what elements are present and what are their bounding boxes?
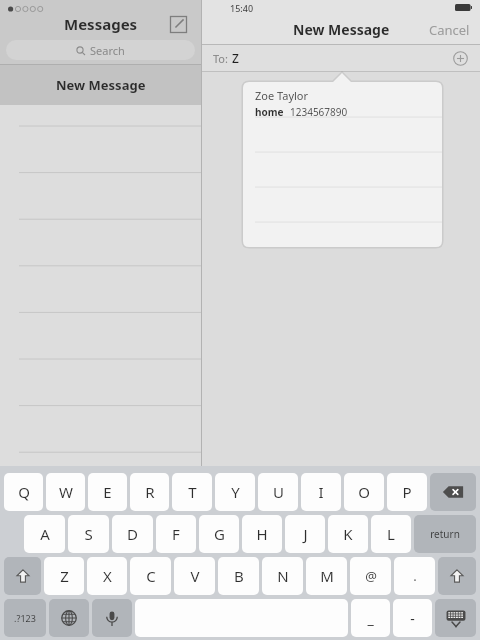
staticText: D [127, 524, 138, 544]
staticText: X [103, 566, 112, 586]
button[interactable]: J [285, 515, 325, 553]
button[interactable]: R [130, 473, 169, 511]
button[interactable]: T [172, 473, 212, 511]
button[interactable]: G [199, 515, 239, 553]
button[interactable]: I [301, 473, 341, 511]
button[interactable]: Shift [4, 557, 41, 595]
button[interactable]: E [88, 473, 127, 511]
staticText: E [103, 482, 112, 502]
button[interactable]: F [156, 515, 196, 553]
button[interactable]: @ [350, 557, 391, 595]
staticText: Q [18, 482, 30, 502]
button[interactable]: C [130, 557, 171, 595]
staticText: 15:40 [230, 2, 254, 14]
staticText: U [273, 482, 284, 502]
staticText: S [84, 524, 93, 544]
staticText: Z [60, 566, 69, 586]
button[interactable]: W [46, 473, 85, 511]
button[interactable]: Y [215, 473, 255, 511]
button[interactable]: Search [6, 40, 195, 60]
staticText: 1234567890 [290, 105, 348, 119]
staticText: L [387, 524, 395, 544]
staticText: W [59, 482, 73, 502]
staticText: Cancel [429, 21, 470, 39]
button[interactable]: Q [4, 473, 43, 511]
staticText: P [402, 482, 412, 502]
staticText: . [413, 567, 417, 585]
staticText: V [190, 566, 200, 586]
staticText: M [320, 566, 334, 586]
button[interactable]: U [258, 473, 298, 511]
staticText: New Message [293, 20, 390, 39]
button[interactable]: . [394, 557, 435, 595]
button[interactable]: return [414, 515, 476, 553]
staticText: _ [367, 609, 374, 628]
staticText: Zoe Taylor [255, 88, 309, 103]
button[interactable]: A [24, 515, 65, 553]
staticText: Messages [64, 14, 138, 34]
staticText: T [188, 482, 197, 502]
button[interactable]: L [371, 515, 411, 553]
button[interactable]: N [262, 557, 303, 595]
button[interactable]: V [174, 557, 215, 595]
staticText: New Message [56, 76, 146, 94]
button[interactable]: Next keyboard [49, 599, 89, 637]
button[interactable]: K [328, 515, 368, 553]
button[interactable]: .?123 [4, 599, 46, 637]
staticText: Z [232, 50, 239, 66]
button[interactable]: H [242, 515, 282, 553]
staticText: N [277, 566, 289, 586]
staticText: B [234, 566, 244, 586]
button[interactable]: S [68, 515, 109, 553]
button[interactable]: D [112, 515, 153, 553]
button[interactable]: _ [351, 599, 390, 637]
staticText: .?123 [14, 612, 36, 624]
staticText: F [172, 524, 180, 544]
staticText: home [255, 105, 284, 119]
staticText: - [410, 609, 415, 628]
staticText: J [303, 524, 308, 544]
staticText: K [343, 524, 353, 544]
staticText: C [146, 566, 156, 586]
button[interactable]: New Message [0, 65, 201, 105]
staticText: O [358, 482, 370, 502]
staticText: G [214, 524, 225, 544]
button[interactable]: M [306, 557, 347, 595]
staticText: R [145, 482, 155, 502]
staticText: return [430, 527, 460, 541]
button[interactable]: Shift [438, 557, 476, 595]
button[interactable]: P [387, 473, 427, 511]
button[interactable]: Backspace [430, 473, 476, 511]
button[interactable]: - [393, 599, 432, 637]
staticText: To: [213, 51, 228, 66]
button[interactable]: Hide keyboard [435, 599, 476, 637]
button[interactable]: Cancel [429, 21, 470, 39]
button[interactable]: B [218, 557, 259, 595]
staticText: Y [231, 482, 240, 502]
button[interactable]: Dictation [92, 599, 132, 637]
button[interactable]: X [87, 557, 127, 595]
staticText: @ [365, 567, 377, 585]
button[interactable]: O [344, 473, 384, 511]
staticText: A [40, 524, 50, 544]
button[interactable]: Z [44, 557, 84, 595]
button[interactable]: Compose new message [165, 11, 191, 37]
button[interactable]: Add contact [450, 48, 470, 68]
staticText: H [256, 524, 268, 544]
staticText: Search [90, 43, 125, 58]
staticText: I [318, 482, 324, 502]
